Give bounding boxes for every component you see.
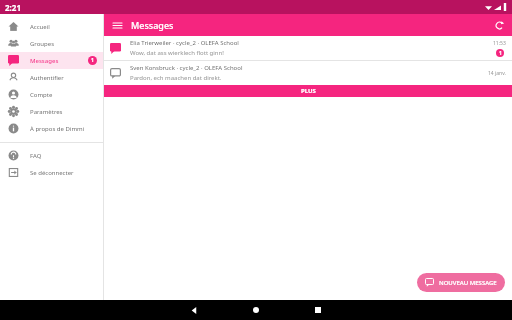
button[interactable]: Groupes xyxy=(0,35,103,52)
staticText: Pardon, ech maachen dat direkt. xyxy=(130,74,222,82)
button[interactable]: Elia Trierweiler · cycle_2 · OLEFA Schoo… xyxy=(104,36,512,60)
staticText: 1 xyxy=(91,57,94,64)
staticText: Wow, dat ass wierklech flott ginn! xyxy=(130,49,224,57)
staticText: 2:21 xyxy=(5,2,21,13)
button[interactable]: Back xyxy=(181,300,207,320)
staticText: Groupes xyxy=(30,40,55,48)
button[interactable]: Paramètres xyxy=(0,103,103,120)
staticText: NOUVEAU MESSAGE xyxy=(439,279,497,287)
staticText: PLUS xyxy=(301,87,316,95)
button[interactable]: NOUVEAU MESSAGE xyxy=(417,273,505,292)
button[interactable]: Refresh xyxy=(491,17,507,33)
button[interactable]: Recent apps xyxy=(305,300,331,320)
staticText: Messages xyxy=(131,19,174,31)
button[interactable]: PLUS xyxy=(104,85,512,97)
button[interactable]: Home xyxy=(243,300,269,320)
button[interactable]: FAQ xyxy=(0,147,103,164)
staticText: 1 xyxy=(499,50,502,57)
staticText: Elia Trierweiler · cycle_2 · OLEFA Schoo… xyxy=(130,39,239,47)
button[interactable]: Open navigation menu xyxy=(109,17,125,33)
button[interactable]: Sven Konsbruck · cycle_2 · OLEFA School xyxy=(104,61,512,85)
button[interactable]: Authentifier xyxy=(0,69,103,86)
staticText: 14 janv. xyxy=(488,70,506,77)
staticText: Paramètres xyxy=(30,108,63,116)
staticText: À propos de Dimmi xyxy=(30,125,85,133)
button[interactable]: Compte xyxy=(0,86,103,103)
button[interactable]: Se déconnecter xyxy=(0,164,103,181)
button[interactable]: Messages xyxy=(0,52,103,69)
button[interactable]: Accueil xyxy=(0,18,103,35)
staticText: Compte xyxy=(30,91,53,99)
staticText: Authentifier xyxy=(30,74,64,82)
button[interactable]: À propos de Dimmi xyxy=(0,120,103,137)
staticText: Messages xyxy=(30,57,59,65)
staticText: Sven Konsbruck · cycle_2 · OLEFA School xyxy=(130,64,243,72)
staticText: 11:53 xyxy=(493,40,506,47)
staticText: Se déconnecter xyxy=(30,169,74,177)
staticText: FAQ xyxy=(30,152,42,160)
staticText: Accueil xyxy=(30,23,50,31)
